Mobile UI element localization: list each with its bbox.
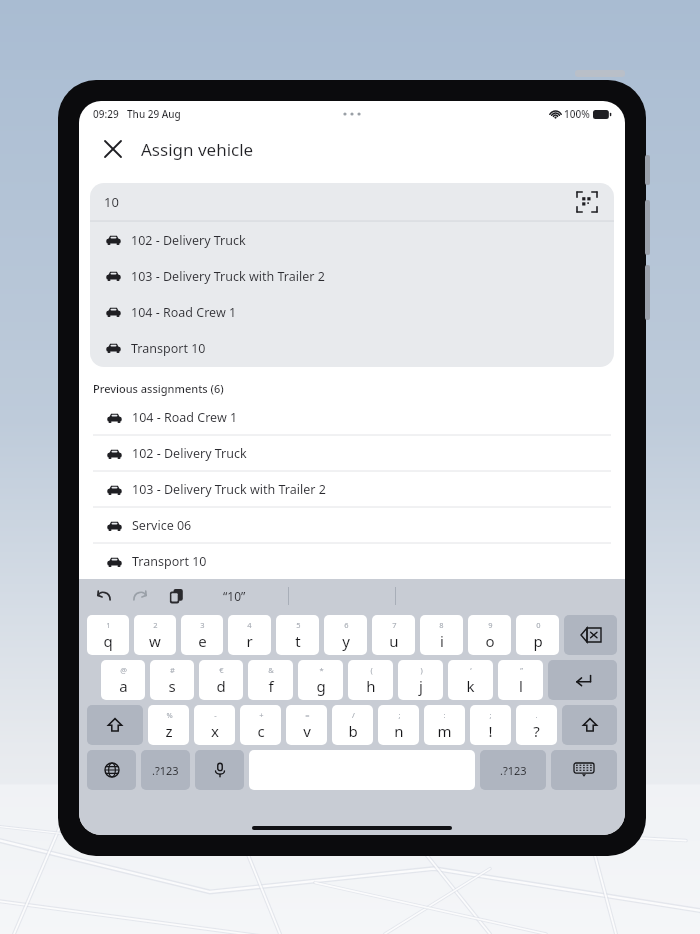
staticText: Service 06 xyxy=(132,517,192,534)
staticText: y xyxy=(342,631,350,651)
button[interactable]: ; xyxy=(470,705,511,745)
button[interactable]: % xyxy=(148,705,189,745)
staticText: 6 xyxy=(344,620,349,630)
button[interactable]: 102 - Delivery Truck xyxy=(90,222,614,258)
staticText: ‘ xyxy=(470,665,472,675)
button[interactable]: + xyxy=(240,705,281,745)
staticText: - xyxy=(214,710,217,720)
button[interactable]: 104 - Road Crew 1 xyxy=(79,400,625,435)
button[interactable]: Redo xyxy=(127,583,153,609)
button[interactable]: 103 - Delivery Truck with Trailer 2 xyxy=(79,472,625,507)
button[interactable]: 1 xyxy=(87,615,129,655)
button[interactable]: 104 - Road Crew 1 xyxy=(90,294,614,330)
staticText: e xyxy=(198,631,207,651)
staticText: ” xyxy=(520,665,523,675)
button[interactable]: Paste xyxy=(163,583,189,609)
button[interactable]: Return xyxy=(548,660,617,700)
staticText: u xyxy=(389,631,399,651)
button[interactable]: 102 - Delivery Truck xyxy=(79,436,625,471)
staticText: w xyxy=(149,631,161,651)
button[interactable]: 4 xyxy=(228,615,271,655)
staticText: 2 xyxy=(153,620,158,630)
button[interactable]: 5 xyxy=(276,615,319,655)
button[interactable]: Transport 10 xyxy=(90,330,614,366)
button[interactable]: * xyxy=(298,660,343,700)
staticText: 0 xyxy=(536,620,541,630)
staticText: h xyxy=(366,676,376,696)
staticText: l xyxy=(519,676,523,696)
staticText: : xyxy=(443,710,446,720)
button[interactable]: € xyxy=(199,660,243,700)
button[interactable]: ‘ xyxy=(448,660,493,700)
staticText: = xyxy=(305,710,310,720)
staticText: Previous assignments (6) xyxy=(93,381,224,396)
button[interactable]: 9 xyxy=(468,615,511,655)
button[interactable]: ) xyxy=(398,660,443,700)
staticText: 9 xyxy=(488,620,493,630)
button[interactable]: - xyxy=(194,705,235,745)
button[interactable]: ” xyxy=(498,660,543,700)
staticText: 1 xyxy=(106,620,111,630)
staticText: n xyxy=(394,721,404,741)
staticText: .?123 xyxy=(152,763,179,778)
button[interactable]: = xyxy=(286,705,327,745)
button[interactable]: “10” xyxy=(223,588,246,604)
staticText: € xyxy=(219,665,224,675)
staticText: s xyxy=(168,676,176,696)
staticText: “10” xyxy=(223,588,246,604)
button[interactable]: / xyxy=(332,705,373,745)
staticText: b xyxy=(348,721,358,741)
staticText: t xyxy=(295,631,301,651)
staticText: .?123 xyxy=(500,763,527,778)
button[interactable]: & xyxy=(248,660,293,700)
button[interactable]: # xyxy=(150,660,194,700)
staticText: + xyxy=(259,710,264,720)
button[interactable]: Change language xyxy=(87,750,136,790)
button[interactable]: 7 xyxy=(372,615,415,655)
button[interactable]: Scan QR code xyxy=(574,189,600,215)
staticText: / xyxy=(352,710,355,720)
staticText: 3 xyxy=(200,620,205,630)
button[interactable]: ; xyxy=(378,705,419,745)
staticText: . xyxy=(535,710,538,720)
button[interactable]: 103 - Delivery Truck with Trailer 2 xyxy=(90,258,614,294)
button[interactable]: ( xyxy=(348,660,393,700)
button[interactable]: Transport 10 xyxy=(79,544,625,579)
staticText: ; xyxy=(489,710,492,720)
staticText: 104 - Road Crew 1 xyxy=(131,304,237,321)
staticText: Transport 10 xyxy=(131,340,206,357)
button[interactable]: Voice input xyxy=(195,750,244,790)
button[interactable]: 2 xyxy=(134,615,176,655)
staticText: 103 - Delivery Truck with Trailer 2 xyxy=(132,481,326,498)
button[interactable]: Close xyxy=(95,131,131,167)
button[interactable]: Numbers xyxy=(141,750,190,790)
staticText: % xyxy=(166,710,173,720)
button[interactable]: Undo xyxy=(91,583,117,609)
button[interactable]: Backspace xyxy=(564,615,617,655)
button[interactable]: 8 xyxy=(420,615,463,655)
staticText: a xyxy=(119,676,128,696)
staticText: 09:29 xyxy=(93,107,119,121)
button[interactable]: Hide keyboard xyxy=(551,750,617,790)
staticText: 7 xyxy=(392,620,397,630)
staticText: k xyxy=(466,676,475,696)
button[interactable]: : xyxy=(424,705,465,745)
button[interactable]: 6 xyxy=(324,615,367,655)
staticText: f xyxy=(268,676,274,696)
staticText: d xyxy=(216,676,226,696)
button[interactable]: Shift xyxy=(562,705,617,745)
staticText: m xyxy=(437,721,452,741)
button[interactable]: . xyxy=(516,705,557,745)
staticText: @ xyxy=(120,665,127,675)
button[interactable]: @ xyxy=(101,660,145,700)
staticText: p xyxy=(533,631,543,651)
button[interactable]: Service 06 xyxy=(79,508,625,543)
button[interactable]: Numbers xyxy=(480,750,546,790)
button[interactable]: 0 xyxy=(516,615,559,655)
button[interactable]: 3 xyxy=(181,615,223,655)
button[interactable]: Shift xyxy=(87,705,143,745)
staticText: * xyxy=(319,665,324,675)
staticText: g xyxy=(316,676,326,696)
staticText: & xyxy=(268,665,274,675)
